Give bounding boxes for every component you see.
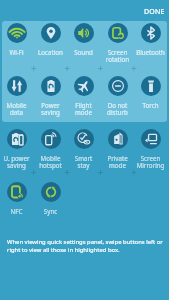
staticText: Mobile hotspot	[34, 154, 67, 169]
button[interactable]: U. power saving	[0, 129, 33, 169]
button[interactable]: Do not disturb	[101, 76, 134, 116]
staticText: When viewing quick settings panel, swipe…	[7, 238, 167, 254]
button[interactable]: Flight mode	[67, 76, 100, 116]
staticText: Smart stay	[67, 154, 100, 169]
staticText: U. power saving	[0, 154, 33, 169]
staticText: Bluetooth	[134, 48, 167, 56]
button[interactable]: Smart stay	[67, 129, 100, 169]
staticText: Mobile data	[0, 101, 33, 116]
staticText: Sound	[67, 48, 100, 56]
button[interactable]: Private mode	[101, 129, 134, 169]
button[interactable]: Screen Mirroring	[134, 129, 167, 169]
staticText: NFC	[0, 207, 33, 215]
button[interactable]: Mobile hotspot	[34, 129, 67, 169]
button[interactable]: Location	[34, 23, 67, 56]
staticText: Private mode	[101, 154, 134, 169]
button[interactable]: Mobile data	[0, 76, 33, 116]
staticText: Do not disturb	[101, 101, 134, 116]
staticText: DONE	[144, 7, 165, 17]
button[interactable]: Sound	[67, 23, 100, 56]
button[interactable]: NFC	[0, 182, 33, 215]
button[interactable]: Wi-Fi	[0, 23, 33, 56]
button[interactable]: Sync	[34, 182, 67, 215]
staticText: Screen Mirroring	[134, 154, 167, 169]
staticText: Flight mode	[67, 101, 100, 116]
staticText: Screen rotation	[101, 48, 134, 63]
button[interactable]: DONE	[141, 5, 168, 19]
button[interactable]: Power saving	[34, 76, 67, 116]
staticText: Torch	[134, 101, 167, 109]
button[interactable]: Bluetooth	[134, 23, 167, 56]
button[interactable]: Screen rotation	[101, 23, 134, 63]
staticText: Sync	[34, 207, 67, 215]
staticText: Wi-Fi	[0, 48, 33, 56]
staticText: Location	[34, 48, 67, 56]
button[interactable]: Torch	[134, 76, 167, 109]
staticText: Power saving	[34, 101, 67, 116]
